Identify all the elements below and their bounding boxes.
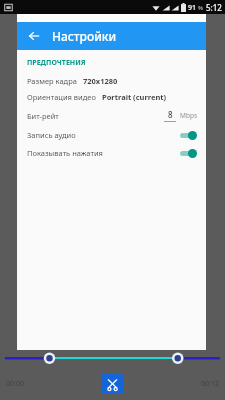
staticText: 8 [168,109,173,120]
button[interactable]: Ориентация видео [17,91,206,103]
staticText: Portrait (current) [102,92,167,102]
button[interactable]: Показывать нажатия [17,145,206,161]
button[interactable]: Trim video [101,374,123,394]
staticText: Запись аудио [27,130,76,140]
button[interactable]: Бит-рейт [17,107,206,124]
button[interactable]: Запись аудио [17,127,206,143]
staticText: 00:00 [6,379,46,389]
staticText: Бит-рейт [27,111,59,121]
staticText: % [198,4,203,12]
staticText: Показывать нажатия [27,148,103,158]
staticText: 5:12 [206,2,222,13]
staticText: 91 [188,3,197,13]
staticText: 720x1280 [83,76,118,86]
staticText: Настройки [52,28,117,44]
button[interactable]: Back [24,26,44,46]
staticText: Ориентация видео [27,92,96,102]
staticText: Mbps [180,111,198,120]
staticText: Размер кадра [27,76,77,86]
staticText: 00:12 [179,379,219,389]
staticText: ПРЕДПОЧТЕНИЯ [27,58,86,68]
button[interactable]: Размер кадра [17,75,206,87]
